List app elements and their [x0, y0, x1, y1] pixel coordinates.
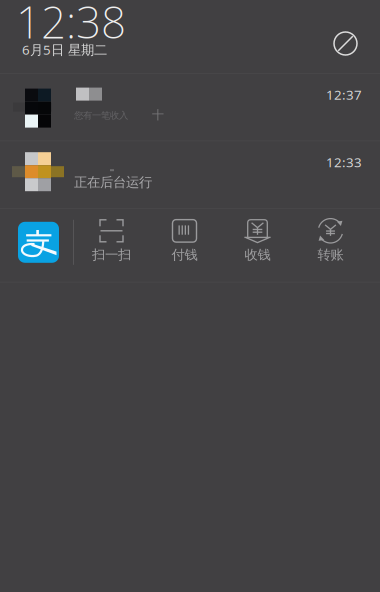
button[interactable]: 勿扰模式 — [316, 0, 380, 73]
staticText: 收钱 — [244, 247, 270, 263]
staticText: 正在后台运行 — [74, 174, 152, 191]
button[interactable]: 您有一笔收入 — [0, 74, 380, 141]
button[interactable]: 正在后台运行 — [0, 141, 380, 208]
button[interactable]: 收钱 — [221, 209, 294, 282]
button[interactable]: 转账 — [294, 209, 367, 282]
button[interactable]: 支付宝 — [0, 209, 69, 273]
staticText: 12:33 — [326, 153, 362, 171]
staticText: 付钱 — [171, 247, 197, 263]
staticText: 您有一笔收入 — [74, 110, 128, 121]
staticText: 12:38 — [16, 0, 126, 51]
button[interactable]: 付钱 — [148, 209, 221, 282]
staticText: 扫一扫 — [92, 247, 131, 263]
staticText: 转账 — [317, 247, 343, 263]
staticText: 6月5日 星期二 — [22, 41, 107, 58]
staticText: 12:37 — [326, 86, 362, 103]
staticText: 十 — [152, 108, 164, 122]
button[interactable]: 扫一扫 — [75, 209, 148, 282]
